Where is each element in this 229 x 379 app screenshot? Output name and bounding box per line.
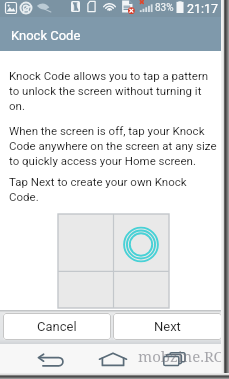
button[interactable]: Back (36, 352, 65, 368)
staticText: Tap Next to create your own Knock Code. (9, 175, 218, 203)
staticText: Next (154, 319, 181, 334)
staticText: Cancel (37, 319, 77, 334)
staticText: mobzine.RO (138, 346, 225, 366)
staticText: Knock Code (11, 28, 81, 43)
staticText: Knock Code allows you to tap a pattern t… (9, 69, 218, 112)
staticText: 21:17 (187, 1, 219, 16)
button[interactable]: Home (98, 352, 129, 368)
button[interactable]: Recent apps (163, 352, 190, 368)
staticText: When the screen is off, tap your Knock C… (9, 124, 218, 167)
button[interactable]: Cancel (3, 313, 111, 340)
button[interactable]: Next (113, 313, 222, 340)
staticText: 83% (155, 2, 174, 14)
